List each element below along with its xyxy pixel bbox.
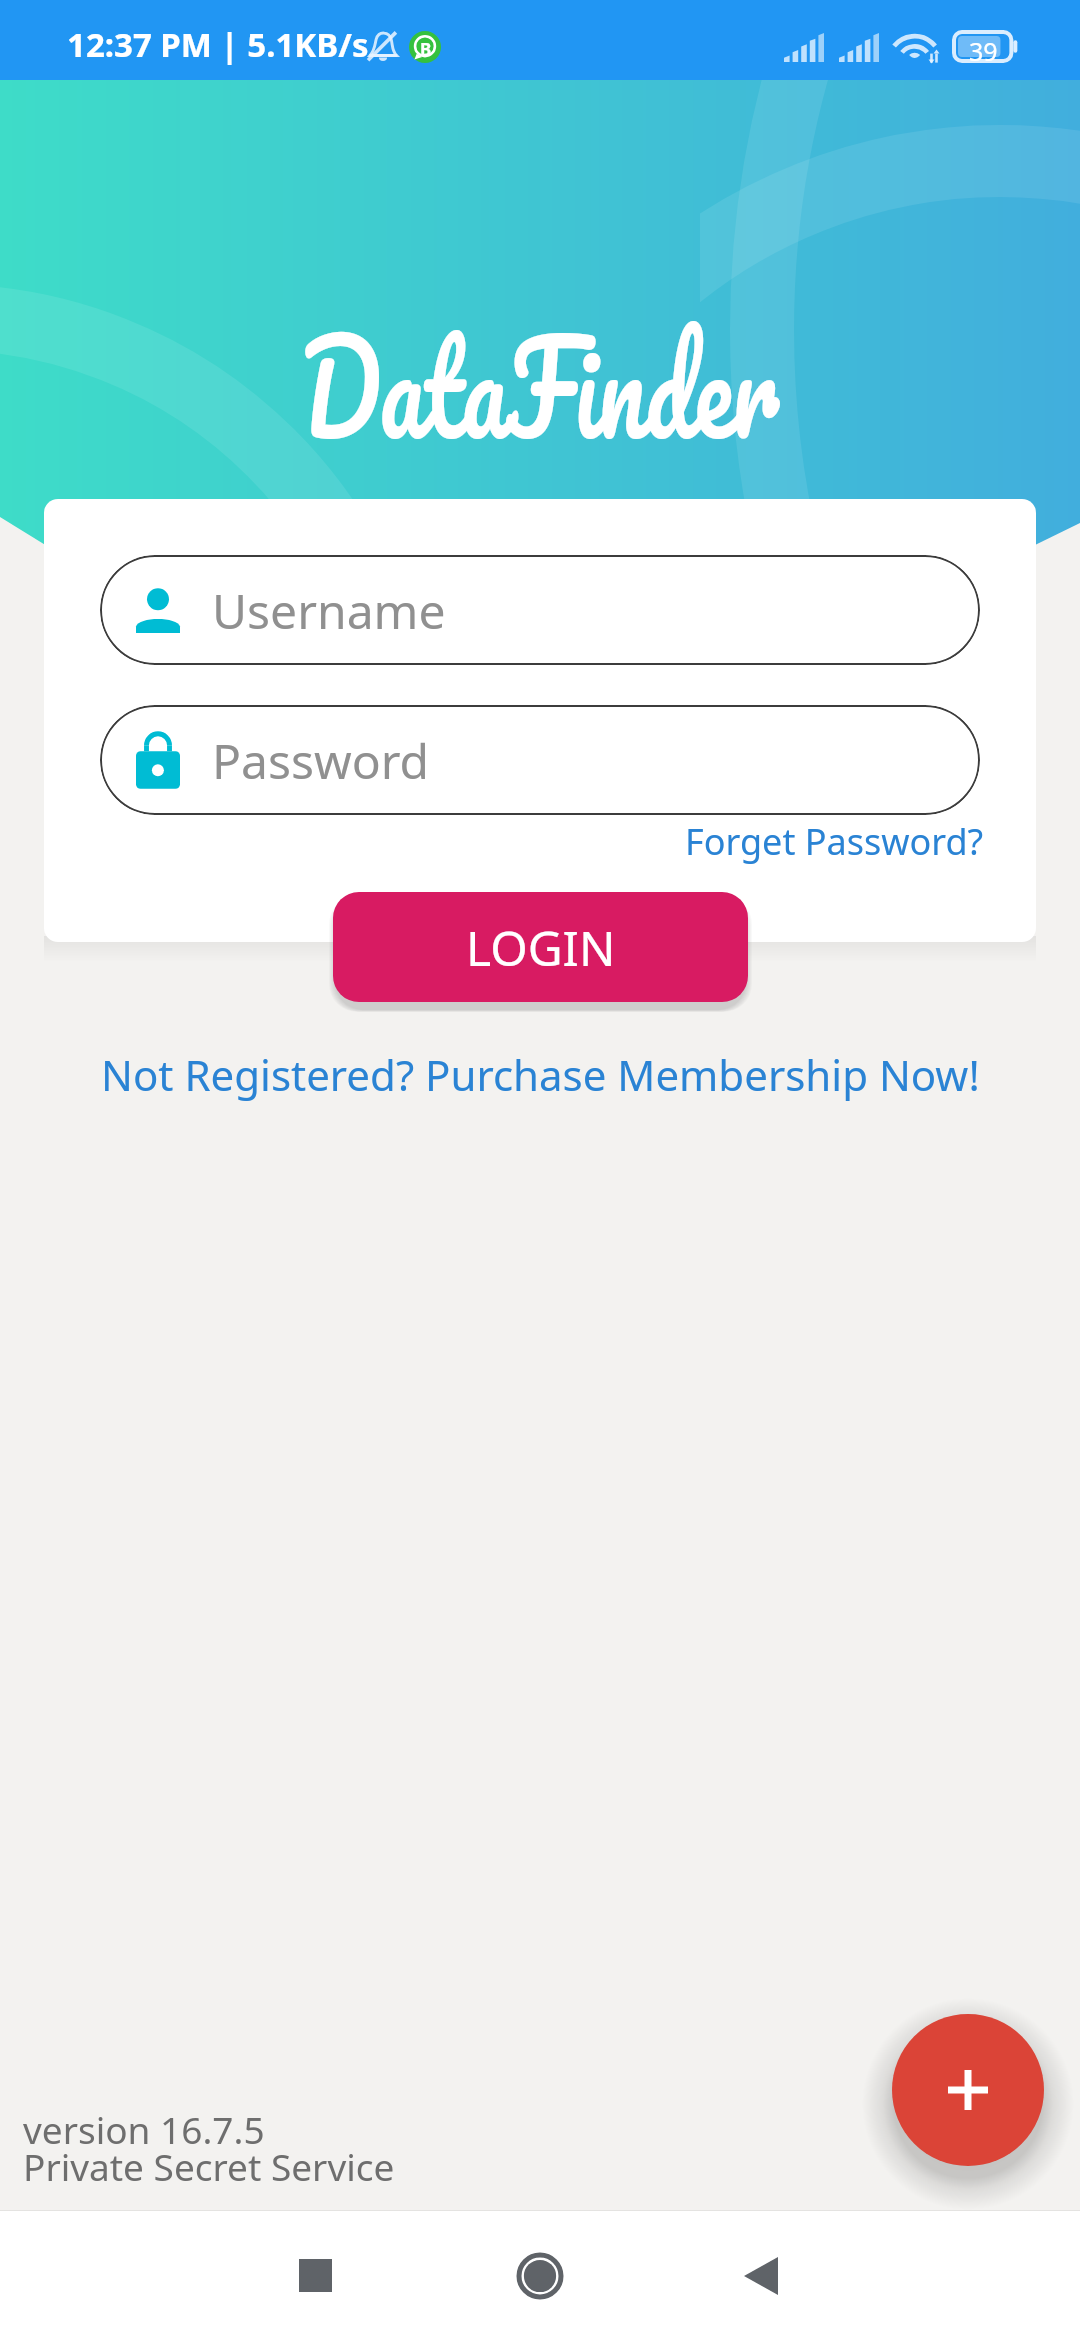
button[interactable]: Add [892, 2014, 1044, 2166]
button[interactable]: Username [100, 555, 980, 665]
staticText: Not Registered? Purchase Membership Now! [101, 1046, 980, 1103]
staticText: LOGIN [466, 915, 616, 980]
staticText: 12:37 PM | 5.1KB/s [67, 22, 369, 67]
staticText: Username [212, 578, 446, 643]
button[interactable]: Back [727, 2242, 794, 2309]
button[interactable]: Home [506, 2242, 573, 2309]
button[interactable]: Recents [282, 2242, 349, 2309]
staticText: DataFinder [124, 276, 956, 494]
staticText: Forget Password? [685, 817, 984, 866]
staticText: B [420, 38, 432, 61]
button[interactable]: Not Registered? Purchase Membership Now! [0, 1046, 1080, 1103]
staticText: 39 [969, 34, 998, 68]
staticText: version 16.7.5 Private Secret Service [23, 2104, 395, 2192]
staticText: Password [212, 728, 430, 793]
button[interactable]: Password [100, 705, 980, 815]
button[interactable]: LOGIN [333, 892, 748, 1002]
button[interactable]: Forget Password? [681, 813, 988, 870]
